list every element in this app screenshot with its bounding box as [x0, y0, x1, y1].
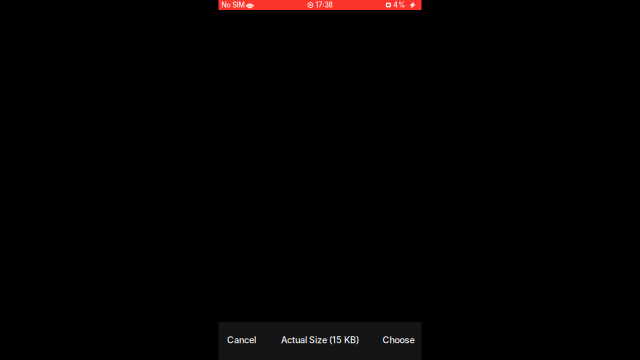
staticText: Actual Size (15 KB) [281, 334, 359, 345]
staticText: 17:38 [315, 1, 332, 9]
staticText: No SIM [221, 1, 244, 9]
button[interactable]: Cancel [223, 322, 260, 360]
button[interactable]: Actual Size (15 KB) [277, 322, 363, 360]
staticText: Cancel [227, 334, 256, 345]
staticText: 4% [393, 1, 405, 9]
staticText: Choose [382, 334, 414, 345]
button[interactable]: Choose [378, 322, 418, 360]
